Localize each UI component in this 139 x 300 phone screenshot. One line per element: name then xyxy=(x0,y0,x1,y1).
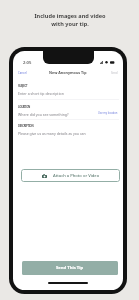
staticText: Use my location xyxy=(98,111,118,115)
staticText: Please give us as many details as you ca… xyxy=(18,131,86,136)
staticText: Attach a Photo or Video xyxy=(53,173,100,179)
staticText: LOCATION xyxy=(18,105,31,109)
button[interactable]: Send xyxy=(109,69,120,77)
staticText: DESCRIPTION xyxy=(18,124,34,128)
staticText: Enter a short tip description xyxy=(18,91,64,96)
staticText: Send xyxy=(111,71,118,75)
staticText: SUBJECT xyxy=(18,84,28,88)
staticText: New Anonymous Tip xyxy=(49,70,87,75)
button[interactable]: Cancel xyxy=(16,69,29,77)
staticText: Where did you see something? xyxy=(18,112,69,117)
staticText: Include images and video with your tip. xyxy=(34,12,106,28)
staticText: Send This Tip xyxy=(56,265,84,271)
staticText: Cancel xyxy=(18,71,27,75)
button[interactable]: Use my location xyxy=(97,109,119,117)
button[interactable]: Attach a Photo or Video xyxy=(21,169,120,182)
button[interactable]: Send This Tip xyxy=(22,261,118,275)
staticText: 2:05 xyxy=(23,60,32,66)
